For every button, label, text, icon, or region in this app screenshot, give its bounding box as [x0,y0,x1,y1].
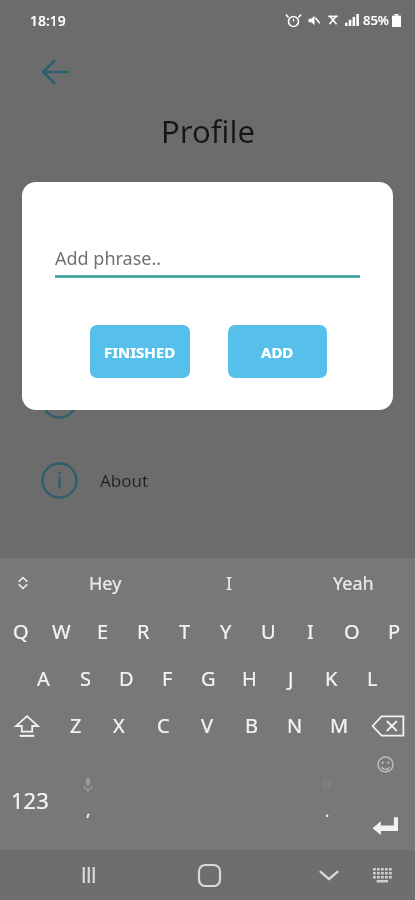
staticText: K [325,665,338,692]
staticText: , [86,798,91,821]
staticText: V [201,712,213,739]
button[interactable]: Recents [62,850,118,900]
button[interactable]: FINISHED [90,325,190,378]
button[interactable]: A [22,655,64,702]
staticText: F [162,665,173,692]
staticText: A [37,665,50,692]
staticText: L [367,665,378,692]
staticText: R [137,618,150,645]
button[interactable]: S [64,655,106,702]
button[interactable]: I [289,608,331,655]
staticText: FINISHED [104,342,176,362]
button[interactable]: V [185,702,229,749]
button[interactable]: P [373,608,415,655]
button[interactable]: Switch keyboard [357,850,409,900]
staticText: C [157,712,170,739]
staticText: I [226,571,233,596]
button[interactable]: M [317,702,361,749]
staticText: D [119,665,134,692]
button[interactable]: E [82,608,123,655]
button[interactable]: ADD [228,325,327,378]
button[interactable]: Back [301,850,357,900]
button[interactable]: Backspace [361,702,415,749]
button[interactable]: J [270,655,311,702]
button[interactable]: Emoji [374,753,396,775]
staticText: H [242,665,257,692]
staticText: Add phrase.. [55,246,162,271]
button[interactable]: Back [36,52,76,92]
button[interactable]: U [247,608,289,655]
staticText: O [344,618,360,645]
button[interactable]: Q [0,608,41,655]
staticText: N [287,712,303,739]
button[interactable]: H [229,655,270,702]
button[interactable]: Y [205,608,247,655]
staticText: W [52,618,71,645]
staticText: 85% [363,11,389,29]
staticText: Z [70,712,82,739]
staticText: . [325,800,330,822]
button[interactable]: D [106,655,147,702]
button[interactable]: L [352,655,393,702]
button[interactable]: C [141,702,185,749]
staticText: G [201,665,216,692]
button[interactable]: Home [181,850,237,900]
staticText: U [261,618,276,645]
button[interactable]: R [123,608,164,655]
button[interactable]: Hey [44,558,167,608]
staticText: M [330,712,349,739]
button[interactable]: Voice input [60,749,116,850]
button[interactable]: Yeah [291,558,415,608]
staticText: P [388,618,401,645]
button[interactable]: B [229,702,273,749]
staticText: Q [13,618,29,645]
button[interactable]: F [147,655,188,702]
button[interactable]: W [41,608,82,655]
staticText: About [100,469,149,492]
staticText: Profile [161,110,255,152]
button[interactable]: K [311,655,352,702]
button[interactable]: Shift [0,702,54,749]
button[interactable]: O [331,608,373,655]
button[interactable]: G [188,655,229,702]
staticText: J [288,665,294,692]
staticText: T [179,618,191,645]
staticText: ADD [261,342,294,362]
staticText: 18:19 [30,11,66,30]
staticText: Yeah [333,571,374,596]
button[interactable]: 123 [0,749,60,850]
staticText: Hey [89,571,122,596]
button[interactable]: I [167,558,291,608]
button[interactable]: Symbols [299,749,355,850]
button[interactable]: About [0,455,415,505]
staticText: 123 [11,785,49,815]
staticText: S [80,665,91,692]
staticText: Y [220,618,232,645]
button[interactable]: Z [54,702,97,749]
staticText: I [307,618,314,645]
button[interactable]: X [97,702,141,749]
button[interactable]: Enter [369,810,401,842]
staticText: B [245,712,258,739]
button[interactable]: Add phrase.. [55,238,360,278]
button[interactable]: Expand toolbar [6,566,40,600]
button[interactable]: T [164,608,205,655]
staticText: !? [323,777,331,792]
button[interactable]: N [273,702,317,749]
staticText: E [97,618,109,645]
staticText: X [113,712,125,739]
